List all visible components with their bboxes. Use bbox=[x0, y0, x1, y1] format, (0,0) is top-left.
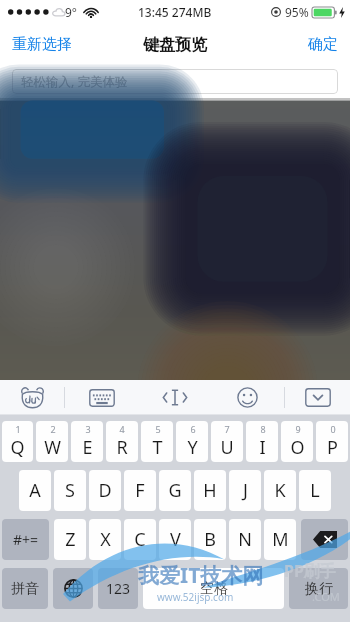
button[interactable]: L bbox=[299, 470, 331, 511]
staticText: 13:45 274MB bbox=[138, 4, 212, 20]
staticText: R bbox=[116, 435, 128, 460]
staticText: 3 bbox=[85, 423, 91, 435]
staticText: 4 bbox=[119, 423, 125, 435]
button[interactable]: 6 bbox=[176, 421, 208, 462]
button[interactable]: Emoji bbox=[211, 380, 284, 415]
staticText: 123 bbox=[106, 579, 131, 598]
staticText: K bbox=[274, 478, 286, 503]
staticText: 换行 bbox=[305, 580, 333, 598]
button[interactable]: 0 bbox=[316, 421, 348, 462]
button[interactable]: 4 bbox=[106, 421, 138, 462]
staticText: 拼音 bbox=[11, 580, 39, 598]
button[interactable]: Baidu input bbox=[0, 380, 64, 415]
staticText: H bbox=[203, 478, 217, 503]
button[interactable]: 3 bbox=[71, 421, 103, 462]
staticText: 7 bbox=[224, 423, 230, 435]
staticText: www.52ijsp.com bbox=[157, 590, 234, 604]
button[interactable]: N bbox=[229, 519, 261, 560]
staticText: 8 bbox=[260, 423, 266, 435]
staticText: I bbox=[259, 435, 266, 460]
button[interactable]: S bbox=[54, 470, 86, 511]
staticText: 2 bbox=[50, 423, 56, 435]
button[interactable]: Hide keyboard bbox=[285, 380, 350, 415]
staticText: U bbox=[220, 435, 234, 460]
button[interactable]: 换行 bbox=[289, 568, 348, 609]
button[interactable]: 9 bbox=[281, 421, 313, 462]
button[interactable]: K bbox=[264, 470, 296, 511]
staticText: N bbox=[238, 527, 252, 552]
button[interactable]: D bbox=[89, 470, 121, 511]
staticText: 确定 bbox=[308, 35, 338, 54]
button[interactable]: 123 bbox=[98, 568, 138, 609]
staticText: 6 bbox=[190, 423, 196, 435]
button[interactable]: V bbox=[159, 519, 191, 560]
staticText: Y bbox=[187, 435, 198, 460]
staticText: Z bbox=[65, 527, 76, 552]
button[interactable]: Move cursor bbox=[138, 380, 211, 415]
button[interactable]: F bbox=[124, 470, 156, 511]
staticText: 轻松输入, 完美体验 bbox=[21, 73, 128, 90]
button[interactable]: C bbox=[124, 519, 156, 560]
button[interactable]: 确定 bbox=[296, 26, 350, 63]
button[interactable]: 轻松输入, 完美体验 bbox=[12, 69, 338, 94]
button[interactable]: G bbox=[159, 470, 191, 511]
staticText: E bbox=[82, 435, 93, 460]
staticText: 1 bbox=[15, 423, 21, 435]
button[interactable]: 2 bbox=[36, 421, 68, 462]
button[interactable]: 8 bbox=[246, 421, 278, 462]
button[interactable]: H bbox=[194, 470, 226, 511]
staticText: PP刷手 bbox=[284, 560, 336, 582]
staticText: M bbox=[272, 527, 289, 552]
staticText: J bbox=[243, 478, 248, 503]
button[interactable]: Delete bbox=[301, 519, 348, 560]
button[interactable]: 5 bbox=[141, 421, 173, 462]
staticText: #+= bbox=[13, 530, 39, 549]
staticText: G bbox=[168, 478, 182, 503]
staticText: 5 bbox=[155, 423, 161, 435]
button[interactable]: #+= bbox=[2, 519, 49, 560]
staticText: X bbox=[100, 527, 111, 552]
button[interactable]: 7 bbox=[211, 421, 243, 462]
staticText: D bbox=[98, 478, 112, 503]
staticText: V bbox=[170, 527, 181, 552]
staticText: 重新选择 bbox=[12, 35, 72, 54]
staticText: 我爱IT技术网 bbox=[138, 561, 264, 590]
staticText: S bbox=[65, 478, 75, 503]
button[interactable]: 重新选择 bbox=[0, 26, 84, 63]
button[interactable]: Switch language bbox=[53, 568, 93, 609]
staticText: T bbox=[152, 435, 163, 460]
staticText: 键盘预览 bbox=[143, 35, 207, 55]
staticText: W bbox=[44, 435, 61, 460]
button[interactable]: M bbox=[264, 519, 296, 560]
staticText: A bbox=[29, 478, 41, 503]
button[interactable]: J bbox=[229, 470, 261, 511]
button[interactable]: Z bbox=[54, 519, 86, 560]
staticText: L bbox=[310, 478, 320, 503]
staticText: P bbox=[327, 435, 338, 460]
staticText: F bbox=[135, 478, 145, 503]
staticText: Q bbox=[10, 435, 25, 460]
staticText: 9 bbox=[295, 423, 301, 435]
button[interactable]: A bbox=[19, 470, 51, 511]
button[interactable]: 拼音 bbox=[2, 568, 48, 609]
staticText: C bbox=[134, 527, 146, 552]
staticText: B bbox=[204, 527, 216, 552]
staticText: 9° bbox=[65, 4, 78, 20]
staticText: .COM bbox=[312, 589, 340, 604]
button[interactable]: Keyboard layout bbox=[65, 380, 138, 415]
button[interactable]: B bbox=[194, 519, 226, 560]
staticText: O bbox=[290, 435, 305, 460]
button[interactable]: X bbox=[89, 519, 121, 560]
staticText: 0 bbox=[330, 423, 336, 435]
staticText: 95% bbox=[285, 4, 309, 20]
staticText: 空格 bbox=[200, 580, 228, 598]
button[interactable]: 空格 bbox=[143, 568, 284, 609]
button[interactable]: 1 bbox=[2, 421, 33, 462]
